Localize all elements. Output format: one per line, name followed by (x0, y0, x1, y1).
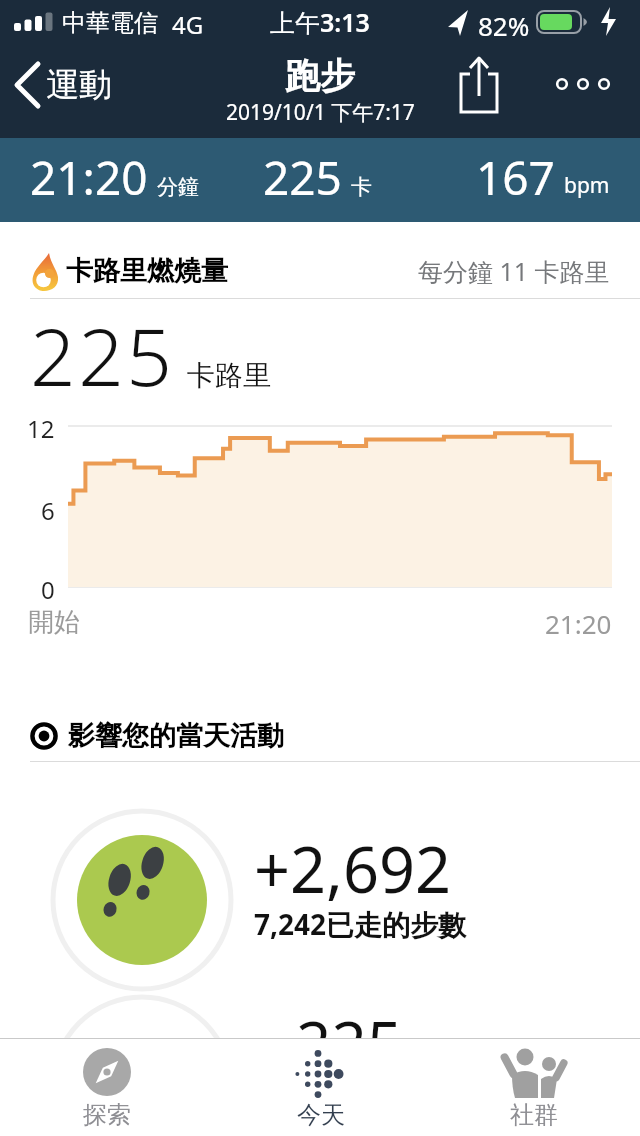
staticText: 運動 (46, 64, 112, 106)
staticText: 跑步 (285, 54, 355, 98)
staticText: 社群 (510, 1100, 558, 1130)
staticText: 上午3:13 (270, 5, 370, 39)
button[interactable]: 社群 (427, 1038, 640, 1136)
button[interactable] (552, 72, 616, 96)
staticText: 82% (478, 8, 530, 43)
staticText: 探索 (83, 1100, 131, 1130)
button[interactable]: 運動 (10, 58, 116, 112)
staticText: 開始 (28, 606, 80, 639)
button[interactable]: 探索 (0, 1038, 214, 1136)
staticText: 225 (263, 146, 342, 209)
staticText: 2019/10/1 下午7:17 (226, 98, 415, 127)
staticText: 分鐘 (157, 174, 199, 200)
staticText: bpm (564, 171, 610, 200)
staticText: 卡路里 (187, 358, 271, 393)
staticText: 卡路里燃燒量 (66, 254, 228, 288)
staticText: 每分鐘 11 卡路里 (418, 254, 610, 288)
staticText: 中華電信 (62, 8, 158, 38)
staticText: 21:20 (30, 146, 148, 209)
staticText: 7,242已走的步數 (254, 905, 467, 943)
staticText: 4G (172, 8, 204, 41)
button[interactable]: 今天 (214, 1038, 427, 1136)
staticText: 今天 (297, 1100, 345, 1130)
staticText: 225 (30, 300, 175, 409)
staticText: 卡 (351, 174, 372, 200)
staticText: 6 (41, 494, 55, 527)
staticText: 167 (476, 146, 555, 209)
staticText: 21:20 (545, 606, 612, 641)
staticText: 225 (296, 1000, 403, 1084)
staticText: 影響您的當天活動 (68, 719, 284, 753)
staticText: 0 (41, 573, 55, 606)
button[interactable] (459, 56, 499, 114)
staticText: 12 (27, 412, 55, 445)
staticText: +2,692 (254, 826, 452, 912)
